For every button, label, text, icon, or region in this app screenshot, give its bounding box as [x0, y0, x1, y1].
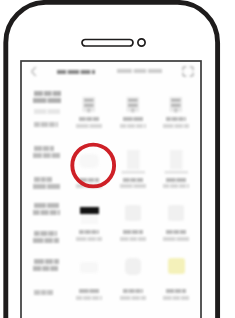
button[interactable]: [112, 91, 154, 143]
button[interactable]: [31, 119, 63, 128]
button[interactable]: [112, 145, 154, 197]
button[interactable]: [31, 200, 63, 217]
button[interactable]: [68, 254, 110, 306]
button[interactable]: [112, 254, 154, 306]
button[interactable]: [68, 200, 110, 252]
button[interactable]: [68, 91, 110, 143]
button[interactable]: [155, 200, 197, 252]
button[interactable]: [31, 106, 63, 115]
button[interactable]: [155, 254, 197, 306]
button[interactable]: [31, 287, 63, 296]
button[interactable]: [31, 143, 63, 160]
button[interactable]: [155, 91, 197, 143]
button[interactable]: [31, 174, 63, 191]
button[interactable]: [68, 145, 110, 197]
button[interactable]: [31, 228, 63, 245]
button[interactable]: [31, 88, 63, 105]
button[interactable]: [155, 145, 197, 197]
button[interactable]: [113, 66, 166, 78]
button[interactable]: [112, 200, 154, 252]
button[interactable]: [31, 256, 63, 273]
button[interactable]: [55, 66, 98, 78]
button[interactable]: Back: [26, 65, 40, 78]
button[interactable]: Scan code: [181, 65, 195, 78]
